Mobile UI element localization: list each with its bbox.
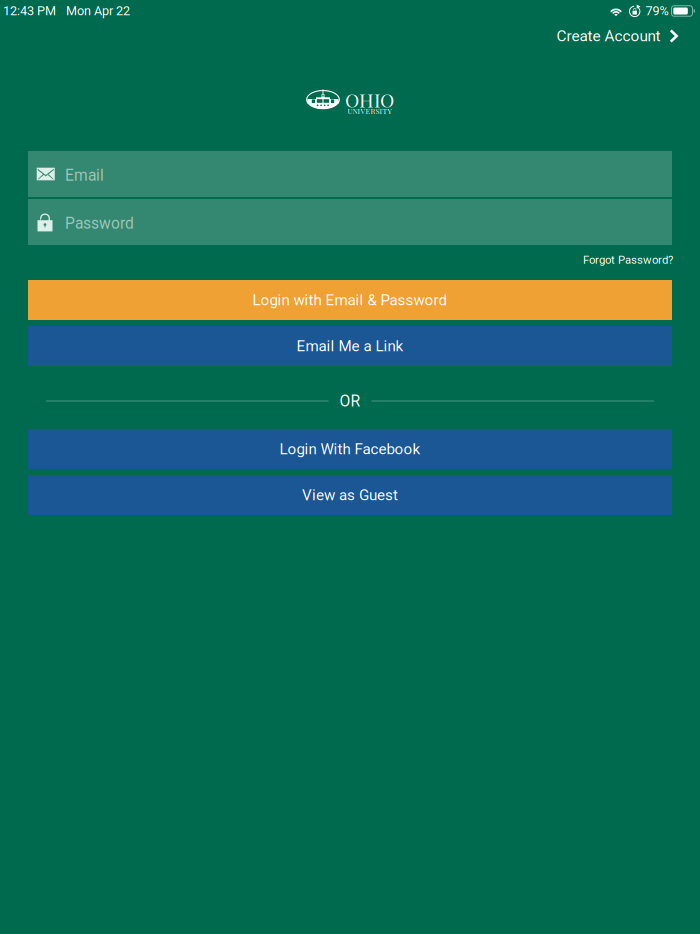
staticText: Email xyxy=(65,166,104,185)
staticText: Email Me a Link xyxy=(296,337,403,355)
button[interactable]: Forgot Password? xyxy=(583,247,673,267)
button[interactable]: Email xyxy=(28,151,672,197)
staticText: View as Guest xyxy=(302,486,398,504)
button[interactable]: Login With Facebook xyxy=(28,429,672,469)
staticText: Mon Apr 22 xyxy=(66,4,130,18)
staticText: UNIVERSITY xyxy=(347,106,391,116)
staticText: 79% xyxy=(645,4,668,18)
button[interactable]: View as Guest xyxy=(28,475,672,515)
staticText: Password xyxy=(65,214,134,233)
staticText: Forgot Password? xyxy=(583,253,673,267)
button[interactable]: Email Me a Link xyxy=(28,326,672,366)
button[interactable]: Login with Email & Password xyxy=(28,280,672,320)
button[interactable]: Password xyxy=(28,199,672,245)
staticText: Login With Facebook xyxy=(279,440,420,458)
staticText: OR xyxy=(339,392,360,410)
staticText: Create Account xyxy=(556,27,660,45)
staticText: Login with Email & Password xyxy=(252,291,447,309)
button[interactable]: Create Account xyxy=(544,23,690,49)
staticText: 12:43 PM xyxy=(3,4,56,18)
staticText: OHIO xyxy=(345,87,394,112)
